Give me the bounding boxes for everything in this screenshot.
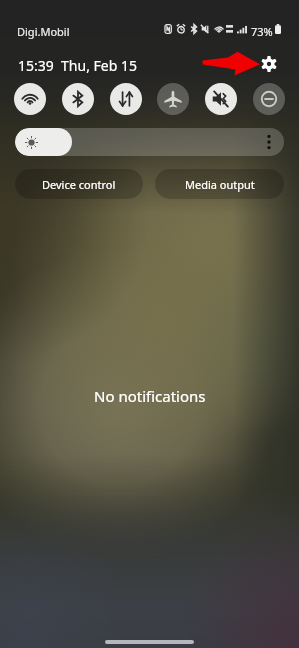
button[interactable]: Media output — [155, 169, 284, 199]
button[interactable]: Airplane mode — [157, 83, 189, 115]
button[interactable]: Vibrate — [205, 83, 237, 115]
staticText: No notifications — [94, 386, 206, 406]
staticText: Device control — [42, 177, 116, 192]
button[interactable]: Wi-Fi — [14, 83, 46, 115]
button[interactable]: Settings — [255, 50, 282, 77]
button[interactable]: Bluetooth — [62, 83, 94, 115]
button[interactable]: Brightness — [15, 128, 284, 156]
button[interactable]: Device control — [15, 169, 143, 199]
button[interactable]: Mobile data — [110, 83, 142, 115]
staticText: 73% — [251, 24, 273, 39]
button[interactable]: Do not disturb — [253, 83, 285, 115]
staticText: Media output — [185, 177, 255, 192]
staticText: Digi.Mobil — [17, 24, 70, 39]
staticText: 15:39 Thu, Feb 15 — [18, 56, 137, 75]
